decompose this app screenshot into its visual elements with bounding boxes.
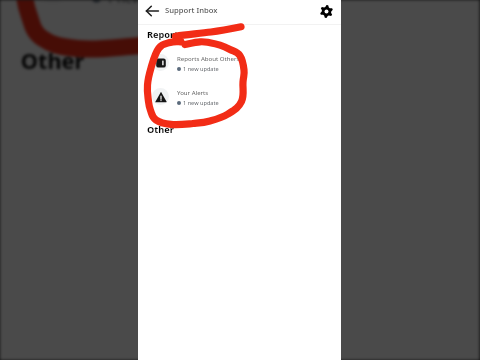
staticText: Support Inbox — [165, 5, 218, 15]
staticText: 1 new update — [106, 0, 191, 7]
staticText: Your Alerts — [177, 88, 209, 96]
staticText: Reports — [147, 28, 183, 41]
staticText: Other — [147, 123, 174, 136]
staticText: Reports About Others — [177, 54, 240, 62]
button[interactable]: Back — [143, 2, 161, 20]
staticText: 1 new update — [183, 65, 219, 73]
button[interactable]: Settings — [317, 2, 335, 20]
button[interactable]: Reports About Others — [138, 47, 341, 77]
button[interactable]: Your Alerts — [138, 81, 341, 111]
staticText: 1 new update — [183, 99, 219, 107]
staticText: Other — [21, 45, 85, 76]
button[interactable]: Your Alerts — [0, 0, 479, 17]
